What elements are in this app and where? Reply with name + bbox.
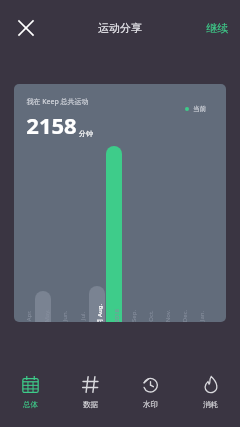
button[interactable]: Calories [180, 357, 240, 427]
staticText: 水印 [143, 400, 158, 409]
staticText: 2018 [113, 295, 121, 322]
staticText: Jan. [198, 295, 206, 322]
button[interactable]: Watermark [120, 357, 180, 427]
button[interactable]: Data [60, 357, 120, 427]
staticText: Mar. [14, 295, 15, 322]
staticText: 2158 [26, 110, 77, 140]
staticText: 数据 [83, 400, 98, 409]
other: Watermark [142, 376, 159, 393]
button[interactable]: Close [6, 8, 46, 48]
staticText: 当前 [193, 105, 206, 113]
staticText: Oct. [147, 295, 155, 322]
other: Calories [202, 376, 219, 393]
staticText: 消耗 [203, 400, 218, 409]
button[interactable]: 我在 Keep 总共运动 [14, 84, 226, 322]
staticText: 总体 [23, 400, 38, 409]
other: Overview [22, 376, 39, 393]
other: Data [82, 376, 99, 393]
staticText: 8月 Aug. [96, 295, 104, 322]
staticText: Nov. [164, 295, 172, 322]
staticText: 继续 [206, 21, 228, 35]
staticText: Apr. [25, 295, 33, 322]
button[interactable]: Overview [0, 357, 60, 427]
staticText: Jul. [79, 295, 87, 322]
staticText: Sep. [130, 295, 138, 322]
staticText: 运动分享 [98, 21, 142, 35]
staticText: 我在 Keep 总共运动 [26, 97, 89, 107]
staticText: 分钟 [79, 129, 93, 138]
staticText: Jun. [61, 295, 69, 322]
staticText: Dec. [181, 295, 189, 322]
button[interactable]: 继续 [202, 13, 232, 43]
